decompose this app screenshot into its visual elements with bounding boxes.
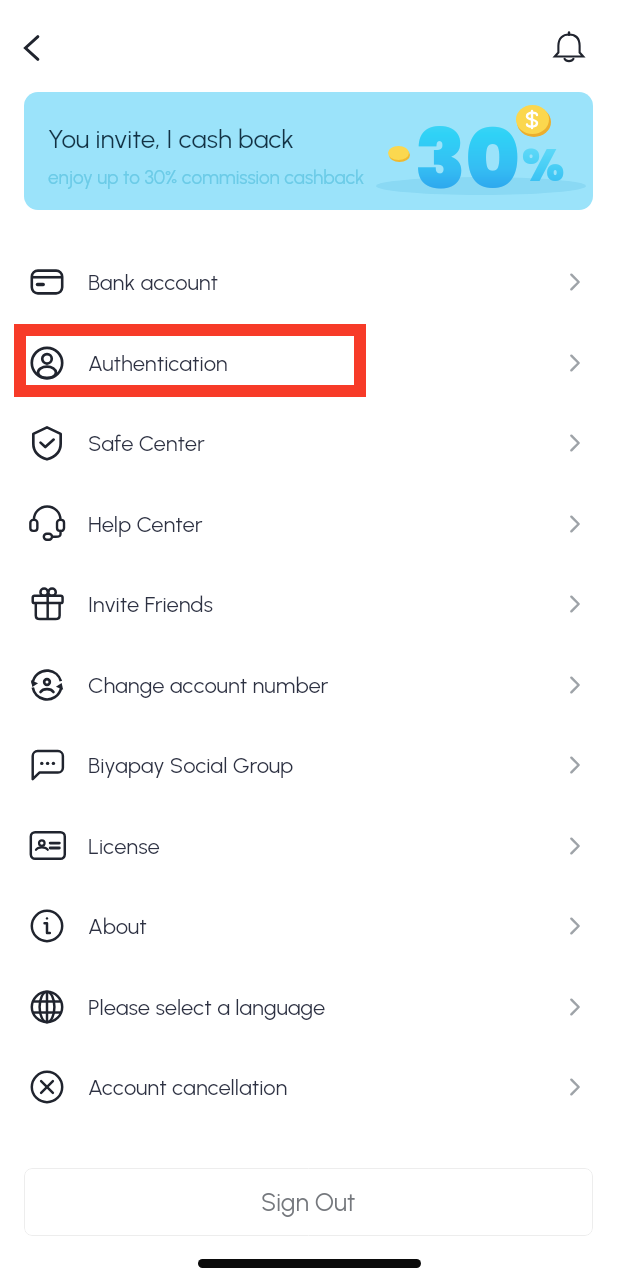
staticText: enjoy up to 30% commission cashback [48, 166, 365, 189]
button[interactable]: About [0, 885, 617, 966]
staticText: Account cancellation [88, 1074, 288, 1100]
staticText: License [88, 833, 160, 859]
staticText: Safe Center [88, 430, 205, 456]
button[interactable]: Account cancellation [0, 1046, 617, 1127]
button[interactable]: Biyapay Social Group [0, 724, 617, 805]
button[interactable]: Please select a language [0, 966, 617, 1047]
button[interactable]: License [0, 805, 617, 886]
staticText: Please select a language [88, 994, 326, 1020]
staticText: % [522, 134, 565, 197]
staticText: 30 [415, 102, 520, 210]
staticText: Invite Friends [88, 591, 213, 617]
button[interactable]: Authentication [0, 322, 617, 403]
button[interactable]: Safe Center [0, 402, 617, 483]
staticText: About [88, 913, 147, 939]
staticText: You invite, I cash back [48, 123, 295, 154]
staticText: Bank account [88, 269, 219, 295]
staticText: Help Center [88, 511, 203, 537]
staticText: Sign Out [261, 1187, 356, 1217]
button[interactable]: Notifications [544, 23, 594, 73]
button[interactable]: Help Center [0, 483, 617, 564]
button[interactable]: Sign Out [24, 1168, 593, 1236]
button[interactable]: Invite Friends [0, 563, 617, 644]
button[interactable]: 30 [24, 92, 593, 210]
button[interactable]: Back [8, 24, 56, 72]
staticText: Biyapay Social Group [88, 752, 294, 778]
staticText: Authentication [88, 350, 228, 376]
button[interactable]: Bank account [0, 241, 617, 322]
staticText: Change account number [88, 672, 329, 698]
button[interactable]: Change account number [0, 644, 617, 725]
